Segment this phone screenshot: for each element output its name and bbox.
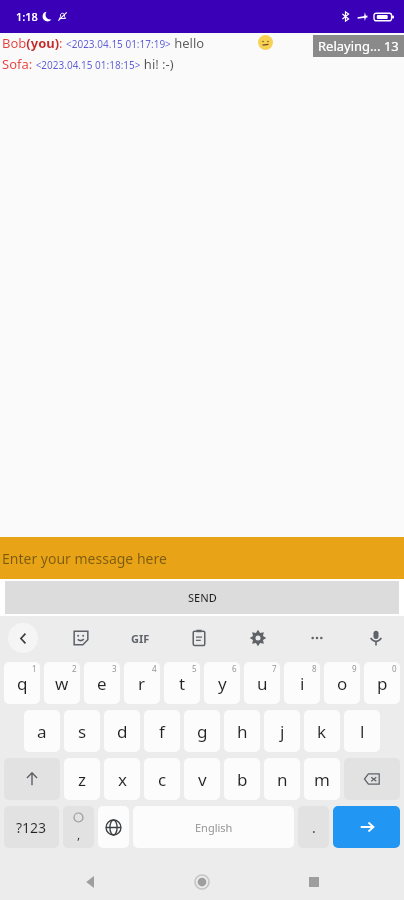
staticText: p [377, 672, 388, 695]
staticText: a [37, 720, 47, 743]
button[interactable]: i [284, 662, 320, 704]
staticText: q [17, 672, 28, 695]
staticText: SEND [188, 590, 217, 605]
button[interactable]: Stickers [65, 622, 97, 654]
button[interactable]: Change language [98, 806, 129, 848]
staticText: , [77, 826, 81, 842]
staticText: w [55, 672, 69, 695]
button[interactable]: Enter [333, 806, 400, 848]
staticText: k [317, 720, 327, 743]
button[interactable]: c [144, 758, 180, 800]
staticText: 6 [232, 663, 237, 674]
button[interactable]: n [264, 758, 300, 800]
button[interactable]: y [204, 662, 240, 704]
button[interactable]: a [24, 710, 60, 752]
staticText: g [197, 720, 208, 743]
button[interactable]: z [64, 758, 100, 800]
button[interactable]: More options [301, 622, 333, 654]
button[interactable]: Enter your message here [0, 537, 404, 579]
staticText: 0 [392, 663, 397, 674]
staticText: l [360, 720, 365, 743]
button[interactable]: Period [298, 806, 329, 848]
staticText: 9 [352, 663, 357, 674]
staticText: 3 [112, 663, 117, 674]
button[interactable]: d [104, 710, 140, 752]
staticText: 5 [192, 663, 197, 674]
button[interactable]: English [133, 806, 294, 848]
staticText: s [78, 720, 87, 743]
staticText: e [97, 672, 107, 695]
button[interactable]: GIF [124, 622, 156, 654]
button[interactable]: h [224, 710, 260, 752]
button[interactable]: r [124, 662, 160, 704]
button[interactable]: p [364, 662, 400, 704]
button[interactable]: Home [181, 863, 223, 900]
staticText: 2 [72, 663, 77, 674]
staticText: GIF [131, 631, 150, 646]
staticText: c [158, 768, 167, 791]
button[interactable]: ?123 [4, 806, 59, 848]
staticText: f [159, 720, 165, 743]
staticText: r [138, 672, 146, 695]
button[interactable]: k [304, 710, 340, 752]
staticText: ?123 [16, 818, 47, 837]
staticText: Enter your message here [2, 549, 167, 568]
button[interactable]: v [184, 758, 220, 800]
staticText: Sofa: <2023.04.15 01:18:15> hi! :-) [2, 55, 174, 73]
staticText: t [179, 672, 186, 695]
staticText: h [237, 720, 248, 743]
button[interactable]: g [184, 710, 220, 752]
staticText: 1:18 [16, 9, 38, 24]
button[interactable]: q [4, 662, 40, 704]
staticText: x [118, 768, 127, 791]
staticText: z [78, 768, 86, 791]
staticText: 4 [152, 663, 157, 674]
staticText: d [117, 720, 128, 743]
button[interactable]: f [144, 710, 180, 752]
staticText: b [237, 768, 248, 791]
staticText: u [257, 672, 268, 695]
button[interactable]: j [264, 710, 300, 752]
button[interactable]: e [84, 662, 120, 704]
button[interactable]: w [44, 662, 80, 704]
button[interactable]: Voice input [360, 622, 392, 654]
button[interactable]: Settings [242, 622, 274, 654]
button[interactable]: Back [70, 863, 112, 900]
staticText: i [300, 672, 305, 695]
button[interactable]: SEND [5, 581, 399, 614]
staticText: m [314, 768, 330, 791]
staticText: English [195, 820, 233, 835]
button[interactable]: Back [8, 623, 38, 653]
staticText: Bob(you): <2023.04.15 01:17:19> hello [2, 34, 208, 52]
staticText: j [280, 720, 285, 743]
button[interactable]: x [104, 758, 140, 800]
button[interactable]: Shift [4, 758, 60, 800]
button[interactable]: s [64, 710, 100, 752]
staticText: 1 [32, 663, 37, 674]
staticText: y [218, 672, 227, 695]
staticText: 7 [272, 663, 277, 674]
button[interactable]: l [344, 710, 380, 752]
button[interactable]: Backspace [344, 758, 400, 800]
staticText: o [337, 672, 348, 695]
staticText: n [277, 768, 288, 791]
button[interactable]: u [244, 662, 280, 704]
button[interactable]: o [324, 662, 360, 704]
button[interactable]: Clipboard [183, 622, 215, 654]
button[interactable]: Comma [63, 806, 94, 848]
button[interactable]: Recent apps [293, 863, 335, 900]
staticText: . [312, 818, 316, 837]
button[interactable]: t [164, 662, 200, 704]
button[interactable]: b [224, 758, 260, 800]
button[interactable]: m [304, 758, 340, 800]
staticText: Relaying... 13 [318, 37, 399, 55]
staticText: v [198, 768, 207, 791]
staticText: 8 [312, 663, 317, 674]
